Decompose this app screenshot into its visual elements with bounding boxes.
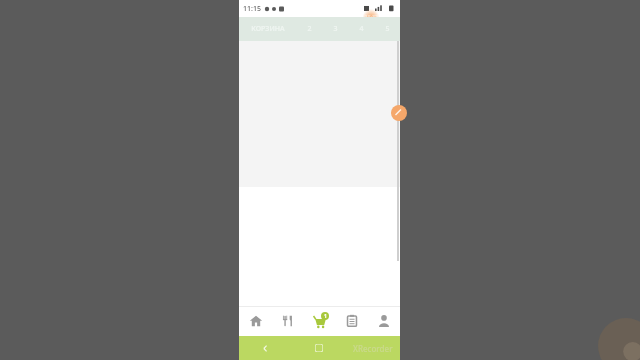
button[interactable]: Orders xyxy=(336,306,368,336)
staticText: 3 xyxy=(333,24,338,34)
staticText: 4 xyxy=(359,24,364,34)
button[interactable]: Cart, 1 item xyxy=(304,306,336,336)
button[interactable]: Profile xyxy=(368,306,400,336)
button[interactable]: КОРЗИНА xyxy=(239,17,296,41)
button[interactable]: Edit xyxy=(391,105,407,121)
staticText: 5 xyxy=(385,24,390,34)
staticText: 18:32 xyxy=(365,14,378,21)
staticText: XRecorder xyxy=(353,343,393,354)
button[interactable]: Home xyxy=(239,306,272,336)
staticText: 2 xyxy=(307,24,312,34)
button[interactable]: Menu xyxy=(272,306,304,336)
staticText: 1 xyxy=(324,313,327,320)
staticText: 11:15 xyxy=(243,4,261,14)
staticText: КОРЗИНА xyxy=(251,24,285,34)
button[interactable]: Back xyxy=(239,336,292,360)
button[interactable]: Home xyxy=(292,336,346,360)
